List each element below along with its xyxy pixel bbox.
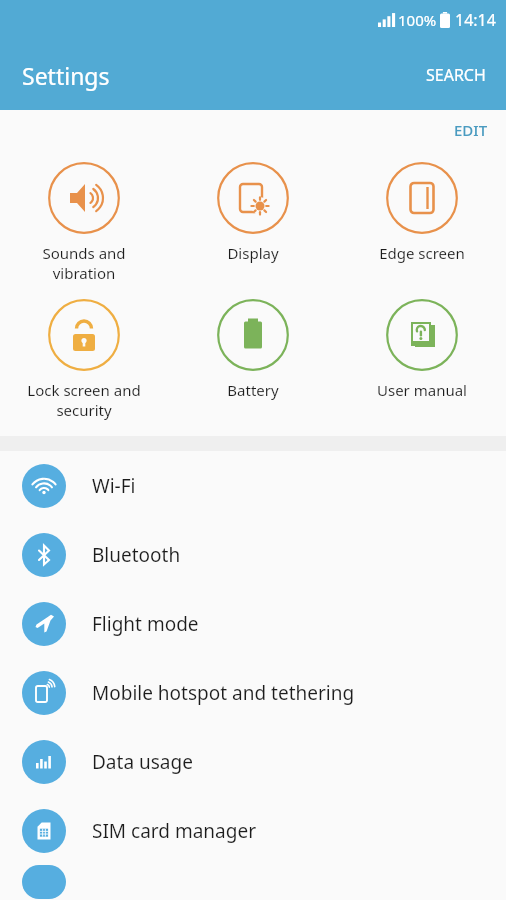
button[interactable]: EDIT <box>436 110 506 150</box>
staticText: 100% <box>398 10 437 30</box>
staticText: Bluetooth <box>92 542 181 568</box>
staticText: Lock screen and security <box>27 380 141 420</box>
staticText: Settings <box>22 60 110 91</box>
button[interactable]: SEARCH <box>406 50 506 100</box>
staticText: SEARCH <box>426 64 486 86</box>
button[interactable]: Flight mode <box>0 589 506 658</box>
button[interactable]: Data usage <box>0 727 506 796</box>
button[interactable]: Sounds and vibration <box>0 160 168 285</box>
staticText: Sounds and vibration <box>42 243 126 283</box>
staticText: Display <box>227 243 279 263</box>
staticText: Flight mode <box>92 611 199 637</box>
button[interactable]: Wi-Fi <box>0 451 506 520</box>
button[interactable]: Mobile hotspot and tethering <box>0 658 506 727</box>
staticText: Edge screen <box>379 243 465 263</box>
staticText: Mobile hotspot and tethering <box>92 680 355 706</box>
staticText: Battery <box>227 380 279 400</box>
button[interactable]: Battery <box>168 297 337 402</box>
staticText: User manual <box>377 380 467 400</box>
staticText: EDIT <box>454 120 488 140</box>
staticText: Data usage <box>92 749 193 775</box>
staticText: SIM card manager <box>92 818 256 844</box>
button[interactable]: Edge screen <box>337 160 506 265</box>
button[interactable]: User manual <box>337 297 506 402</box>
button[interactable]: SIM card manager <box>0 796 506 865</box>
button[interactable]: Display <box>168 160 337 265</box>
button[interactable]: Lock screen and security <box>0 297 168 422</box>
staticText: Wi-Fi <box>92 473 136 499</box>
button[interactable]: Bluetooth <box>0 520 506 589</box>
staticText: 14:14 <box>455 9 496 31</box>
